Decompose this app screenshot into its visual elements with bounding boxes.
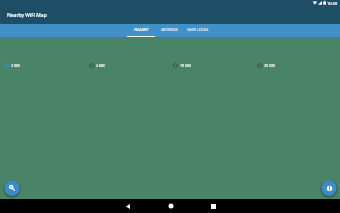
button[interactable]: 4 KM (89, 63, 169, 68)
button[interactable]: 10 KM (173, 63, 253, 68)
button[interactable]: NEARBY (127, 24, 155, 37)
button[interactable]: Recents (192, 199, 235, 213)
staticText: 20 KM (264, 63, 275, 68)
staticText: 2 KM (11, 63, 20, 68)
button[interactable]: Home (149, 199, 192, 213)
staticText: ADDRESS (161, 27, 178, 32)
staticText: SAVE LOCAL (187, 27, 209, 32)
button[interactable]: 2 KM (4, 63, 85, 68)
button[interactable]: SAVE LOCAL (183, 24, 213, 37)
button[interactable]: 20 KM (257, 63, 337, 68)
staticText: NEARBY (134, 27, 149, 32)
staticText: 10 KM (180, 63, 191, 68)
button[interactable]: My location (320, 179, 338, 197)
button[interactable]: Back (106, 199, 149, 213)
button[interactable]: ADDRESS (155, 24, 183, 37)
staticText: 10:50 (327, 1, 338, 6)
staticText: 4 KM (96, 63, 105, 68)
staticText: Nearby WiFi Map (7, 12, 47, 19)
button[interactable]: Search (3, 179, 21, 197)
